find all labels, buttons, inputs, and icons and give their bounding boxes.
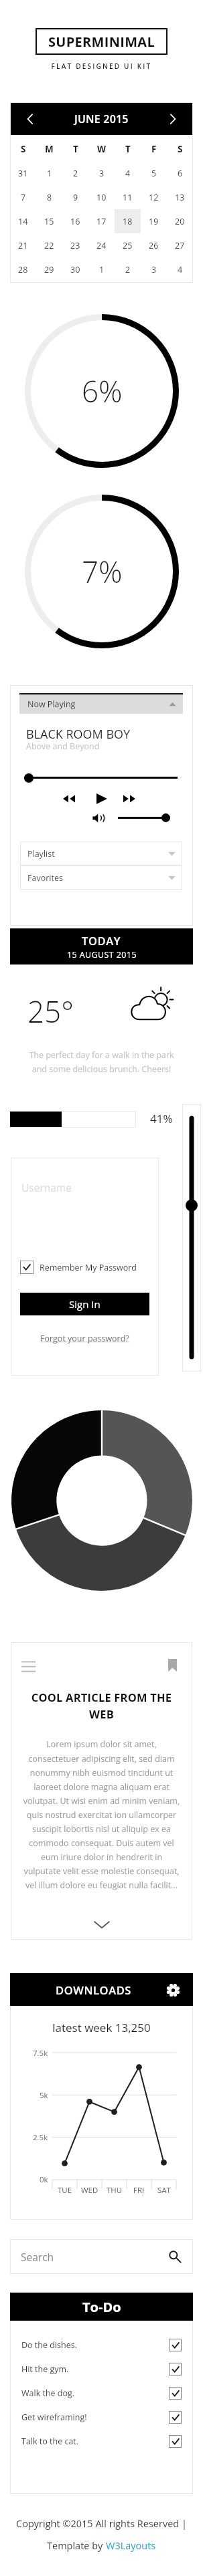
button[interactable]: 3 — [141, 257, 167, 281]
button[interactable]: 30 — [62, 257, 88, 281]
button[interactable]: Sign In — [20, 1293, 149, 1315]
staticText: Now Playing — [27, 698, 76, 710]
button[interactable]: Menu — [21, 1658, 39, 1675]
button[interactable]: 21 — [10, 233, 36, 257]
staticText: 17 — [96, 216, 107, 227]
staticText: 7 — [21, 192, 26, 203]
button[interactable]: 1 — [88, 257, 115, 281]
staticText: Lorem ipsum dolor sit amet, consectetuer… — [21, 1738, 182, 1891]
button[interactable]: 13 — [167, 185, 193, 209]
button[interactable]: Forgot your password? — [40, 1333, 129, 1344]
staticText: TUE — [58, 2185, 72, 2196]
button[interactable]: 16 — [62, 209, 88, 233]
staticText: 5 — [151, 168, 157, 179]
staticText: 4 — [125, 168, 131, 179]
button[interactable]: 2 — [115, 257, 141, 281]
button[interactable]: 25 — [115, 233, 141, 257]
button[interactable]: 18 — [115, 209, 141, 233]
staticText: 28 — [18, 264, 28, 275]
staticText: TODAY — [82, 933, 121, 948]
button[interactable]: Play — [93, 790, 111, 807]
staticText: Search — [21, 2250, 54, 2264]
button[interactable]: Volume — [90, 810, 107, 826]
button[interactable]: 10 — [88, 185, 115, 209]
staticText: Sign In — [69, 1297, 100, 1311]
button[interactable]: Remember My Password — [20, 1261, 137, 1274]
staticText: 20 — [175, 216, 185, 227]
button[interactable]: 28 — [10, 257, 36, 281]
button[interactable]: 31 — [10, 161, 36, 185]
staticText: Playlist — [27, 848, 55, 860]
button[interactable]: 11 — [115, 185, 141, 209]
staticText: 31 — [18, 168, 28, 179]
button[interactable]: 14 — [10, 209, 36, 233]
button[interactable]: Walk the dog. — [21, 2381, 182, 2405]
button[interactable]: Get wireframing! — [21, 2405, 182, 2429]
staticText: 15 — [44, 216, 54, 227]
button[interactable]: 23 — [62, 233, 88, 257]
button[interactable]: Settings — [165, 1982, 181, 1998]
staticText: BLACK ROOM BOY — [26, 726, 131, 743]
button[interactable]: Favorites — [27, 866, 176, 890]
button[interactable]: Next track — [121, 790, 138, 807]
staticText: 1 — [99, 264, 105, 275]
staticText: 22 — [44, 240, 54, 251]
button[interactable]: 4 — [115, 161, 141, 185]
staticText: Talk to the cat. — [21, 2436, 79, 2447]
staticText: 18 — [123, 216, 133, 227]
staticText: 13 — [175, 192, 185, 203]
button[interactable]: Talk to the cat. — [21, 2429, 182, 2453]
button[interactable]: Vertical volume slider — [182, 1104, 201, 1372]
button[interactable]: Hit the gym. — [21, 2357, 182, 2381]
staticText: 27 — [175, 240, 185, 251]
button[interactable]: 3 — [88, 161, 115, 185]
button[interactable]: 1 — [36, 161, 62, 185]
button[interactable]: 15 — [36, 209, 62, 233]
button[interactable]: Bookmark — [163, 1656, 181, 1674]
staticText: 6 — [178, 168, 183, 179]
button[interactable]: Previous month — [23, 111, 39, 127]
button[interactable]: 24 — [88, 233, 115, 257]
button[interactable]: 17 — [88, 209, 115, 233]
staticText: 15 AUGUST 2015 — [67, 949, 137, 960]
button[interactable]: Next month — [164, 111, 180, 127]
staticText: 4 — [178, 264, 183, 275]
staticText: Do the dishes. — [21, 2339, 77, 2351]
staticText: 21 — [18, 240, 28, 251]
staticText: 23 — [70, 240, 80, 251]
button[interactable]: Playlist — [27, 842, 176, 866]
staticText: 1 — [47, 168, 52, 179]
staticText: Get wireframing! — [21, 2412, 87, 2423]
staticText: THU — [107, 2185, 123, 2196]
button[interactable]: 4 — [167, 257, 193, 281]
button[interactable]: 8 — [36, 185, 62, 209]
staticText: 5k — [40, 2090, 48, 2101]
staticText: 16 — [70, 216, 80, 227]
staticText: Template by — [47, 2539, 106, 2553]
button[interactable]: 20 — [167, 209, 193, 233]
button[interactable]: W3Layouts — [106, 2539, 156, 2553]
button[interactable]: Expand article — [90, 1913, 113, 1936]
button[interactable]: Do the dishes. — [21, 2333, 182, 2357]
button[interactable]: 2 — [62, 161, 88, 185]
staticText: FLAT DESIGNED UI KIT — [0, 61, 203, 71]
button[interactable]: Previous track — [60, 790, 78, 807]
button[interactable]: 5 — [141, 161, 167, 185]
staticText: M — [45, 143, 54, 155]
button[interactable]: 22 — [36, 233, 62, 257]
button[interactable]: Search — [21, 2239, 181, 2274]
button[interactable]: 7 — [10, 185, 36, 209]
button[interactable]: 27 — [167, 233, 193, 257]
button[interactable]: Progress 41 percent — [9, 1111, 136, 1128]
staticText: Hit the gym. — [21, 2363, 69, 2375]
staticText: 7% — [82, 551, 123, 592]
staticText: 12 — [149, 192, 159, 203]
button[interactable]: 12 — [141, 185, 167, 209]
staticText: T — [73, 143, 78, 155]
button[interactable]: 19 — [141, 209, 167, 233]
button[interactable]: 9 — [62, 185, 88, 209]
button[interactable]: 29 — [36, 257, 62, 281]
staticText: 25 — [123, 240, 133, 251]
button[interactable]: 26 — [141, 233, 167, 257]
button[interactable]: 6 — [167, 161, 193, 185]
